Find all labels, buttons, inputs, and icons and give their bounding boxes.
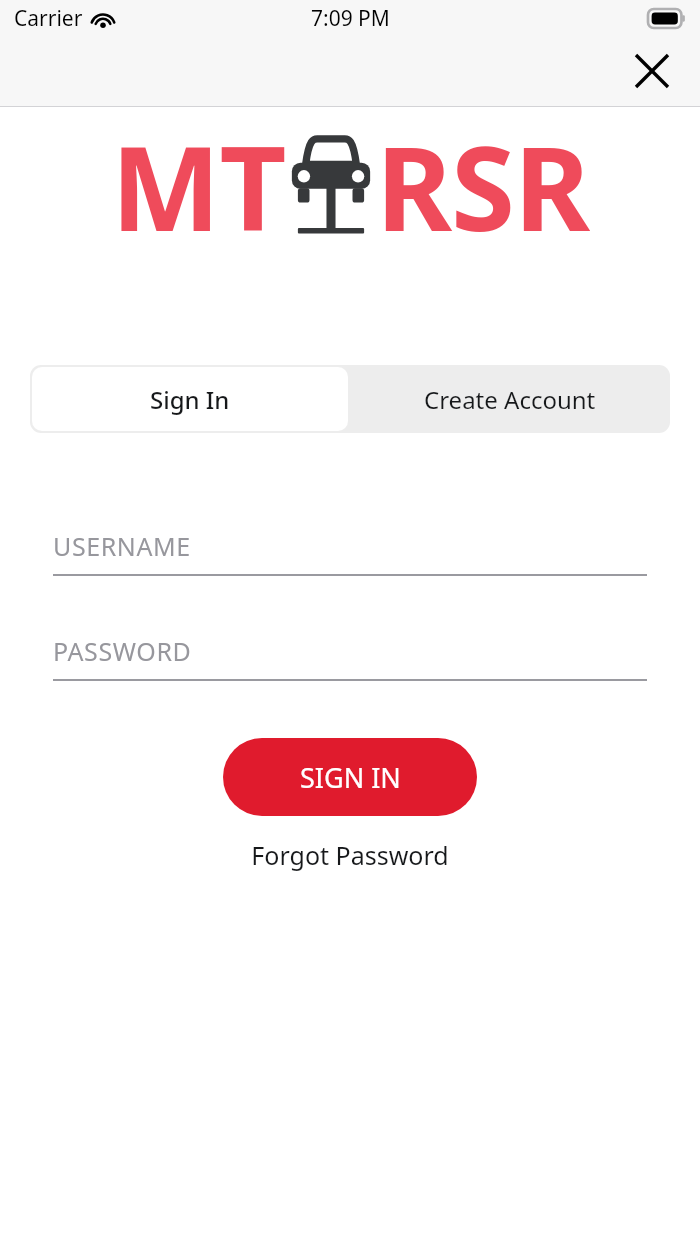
staticText: RSR	[376, 107, 590, 260]
button[interactable]: USERNAME	[53, 525, 647, 576]
staticText: SIGN IN	[300, 759, 401, 796]
staticText: Sign In	[150, 383, 230, 416]
staticText: MT	[111, 107, 286, 260]
staticText: Carrier	[14, 4, 83, 33]
button[interactable]: Create Account	[350, 365, 670, 433]
button[interactable]: SIGN IN	[223, 738, 477, 816]
staticText: PASSWORD	[53, 634, 192, 668]
staticText: 7:09 PM	[311, 4, 390, 33]
button[interactable]: Close	[618, 38, 686, 104]
staticText: Forgot Password	[251, 838, 449, 872]
staticText: USERNAME	[53, 529, 191, 563]
button[interactable]: Forgot Password	[235, 834, 465, 876]
button[interactable]: PASSWORD	[53, 630, 647, 681]
button[interactable]: Sign In	[32, 367, 348, 431]
staticText: Create Account	[424, 383, 596, 416]
